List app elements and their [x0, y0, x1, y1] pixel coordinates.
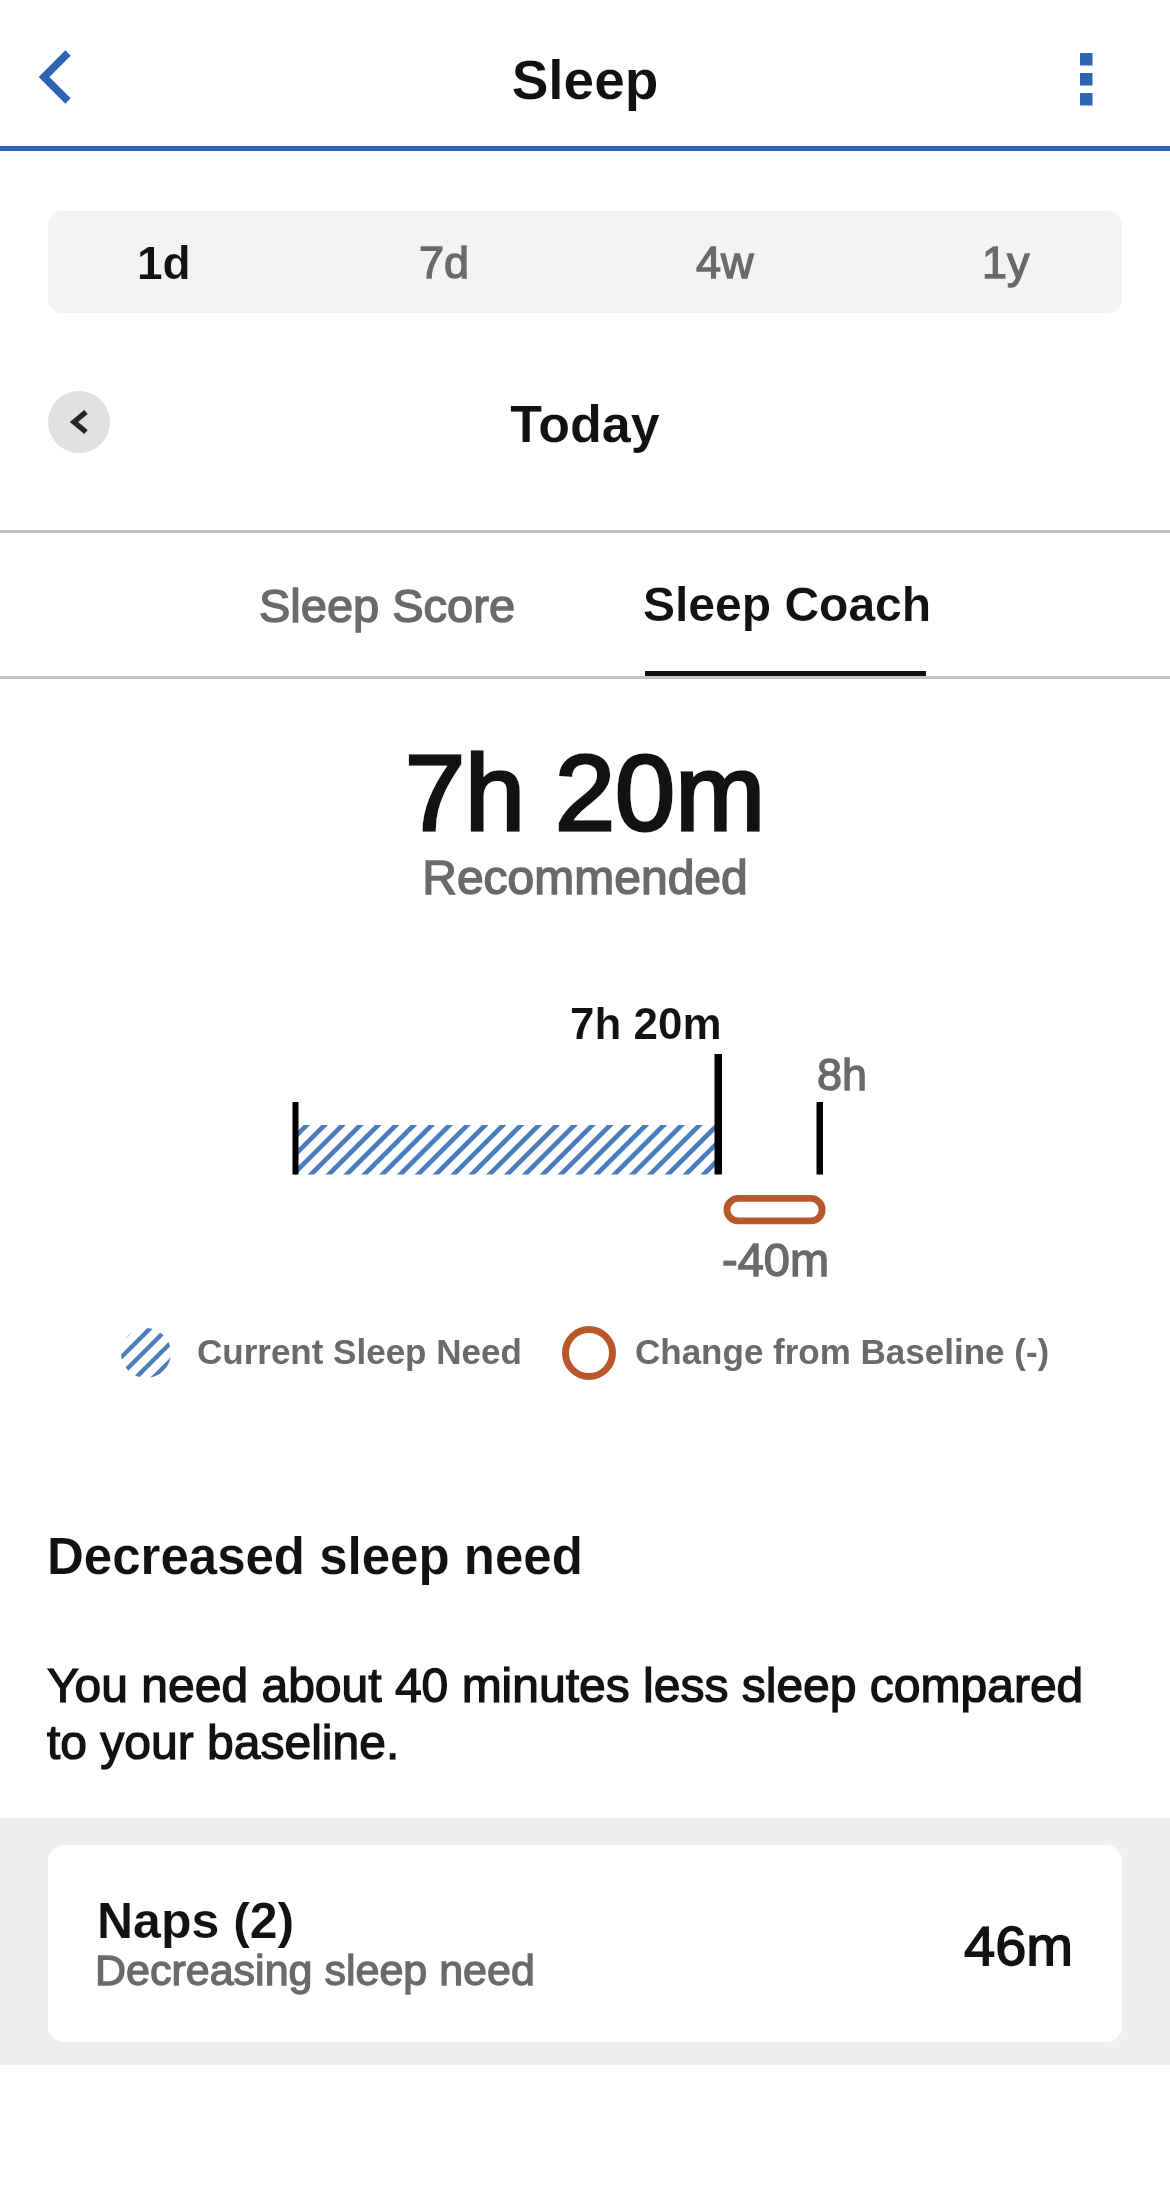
- button[interactable]: [585, 533, 1170, 677]
- staticText: Change from Baseline (-): [635, 1332, 1050, 1371]
- staticText: 7h 20m: [570, 999, 722, 1048]
- button[interactable]: 4w: [584, 237, 865, 287]
- button[interactable]: Naps (2): [48, 1845, 1122, 2042]
- staticText: -40m: [722, 1233, 830, 1286]
- staticText: 46m: [964, 1914, 1073, 1977]
- staticText: Decreased sleep need: [47, 1528, 583, 1585]
- staticText: Today: [0, 395, 1170, 453]
- staticText: Recommended: [0, 851, 1170, 905]
- staticText: Sleep Coach: [643, 578, 932, 632]
- staticText: You need about 40 minutes less sleep com…: [47, 1659, 1107, 1769]
- staticText: 1y: [982, 237, 1030, 287]
- button[interactable]: Previous day: [48, 391, 110, 453]
- button[interactable]: 7d: [304, 237, 584, 287]
- button[interactable]: 1d: [24, 237, 304, 288]
- staticText: 8h: [817, 1049, 868, 1099]
- button[interactable]: [0, 533, 585, 677]
- button[interactable]: 1y: [865, 237, 1146, 287]
- staticText: 4w: [696, 237, 754, 287]
- staticText: Sleep Score: [259, 579, 516, 632]
- button[interactable]: More options: [1036, 29, 1136, 129]
- staticText: 7d: [419, 237, 470, 287]
- staticText: 7h 20m: [0, 732, 1170, 853]
- staticText: Naps (2): [97, 1893, 295, 1949]
- staticText: Current Sleep Need: [197, 1332, 522, 1371]
- staticText: Decreasing sleep need: [95, 1946, 535, 1994]
- staticText: Sleep: [0, 49, 1170, 110]
- staticText: 1d: [137, 237, 191, 288]
- button[interactable]: Navigate back: [10, 15, 126, 131]
